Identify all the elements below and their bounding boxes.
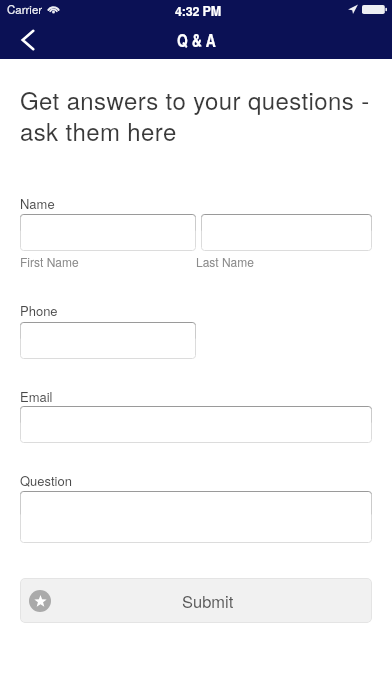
staticText: Q & A [177, 28, 216, 52]
staticText: Last Name [196, 253, 254, 270]
button[interactable] [20, 406, 372, 443]
staticText: Carrier [7, 1, 43, 17]
button[interactable] [20, 214, 196, 251]
button[interactable] [20, 322, 196, 359]
staticText: 4:32 PM [175, 2, 221, 20]
button[interactable] [201, 214, 372, 251]
staticText: First Name [20, 253, 79, 270]
staticText: Name [20, 194, 55, 213]
staticText: Submit [182, 589, 234, 613]
staticText: Phone [20, 301, 58, 320]
button[interactable]: Back [0, 20, 50, 59]
button[interactable]: Submit [20, 578, 372, 623]
button[interactable] [20, 491, 372, 543]
staticText: Email [20, 387, 53, 406]
staticText: Question [20, 471, 72, 490]
staticText: Get answers to your questions - ask them… [20, 82, 372, 148]
